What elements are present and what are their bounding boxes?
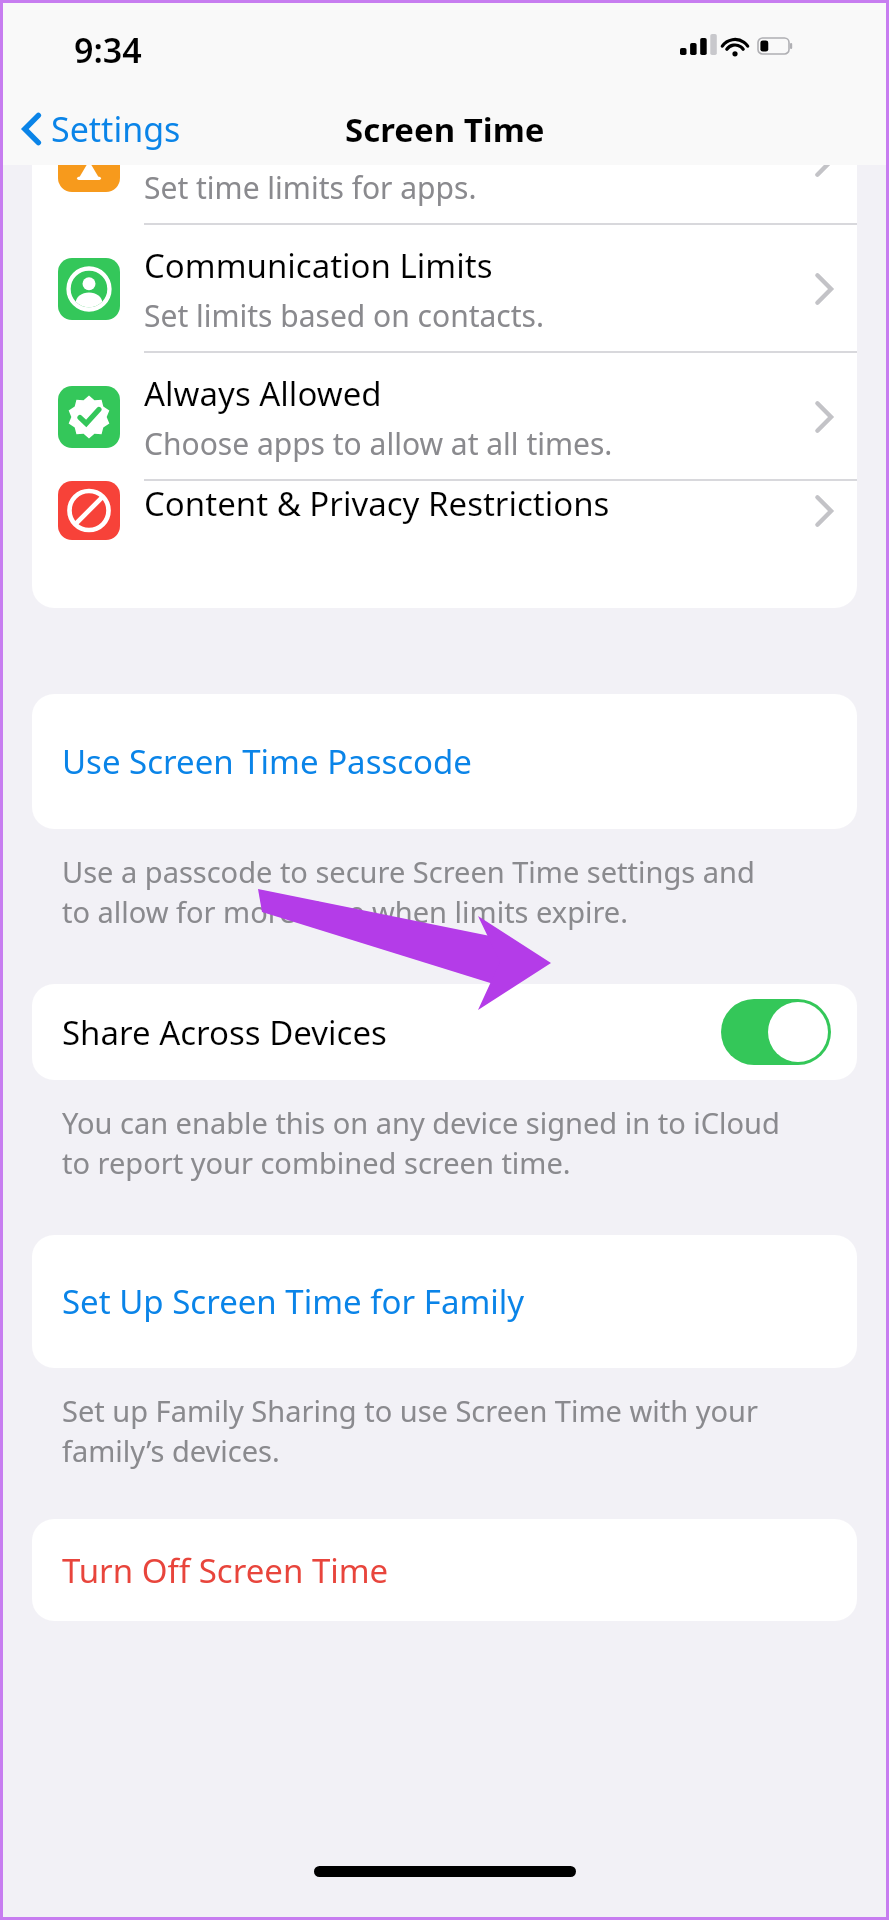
button[interactable]: Set Up Screen Time for Family <box>32 1235 857 1368</box>
staticText: Set up Family Sharing to use Screen Time… <box>62 1391 758 1471</box>
staticText: Communication Limits <box>144 243 493 288</box>
button[interactable]: Share Across Devices toggle, on <box>721 999 831 1065</box>
staticText: Use Screen Time Passcode <box>62 739 472 784</box>
staticText: Set Up Screen Time for Family <box>62 1279 525 1324</box>
button[interactable]: App Limits <box>32 165 857 225</box>
staticText: Set time limits for apps. <box>144 167 477 208</box>
staticText: 9:34 <box>74 27 142 73</box>
staticText: Settings <box>51 106 181 152</box>
staticText: You can enable this on any device signed… <box>62 1103 780 1183</box>
button[interactable]: Turn Off Screen Time <box>32 1519 857 1621</box>
staticText: Set limits based on contacts. <box>144 295 544 336</box>
staticText: Always Allowed <box>144 371 382 416</box>
staticText: Choose apps to allow at all times. <box>144 423 613 464</box>
button[interactable]: Use Screen Time Passcode <box>32 694 857 829</box>
button[interactable]: Settings <box>12 100 191 158</box>
staticText: Use a passcode to secure Screen Time set… <box>62 852 755 932</box>
button[interactable]: Always Allowed <box>32 353 857 481</box>
button[interactable]: Communication Limits <box>32 225 857 353</box>
staticText: Content & Privacy Restrictions <box>144 481 610 526</box>
staticText: Share Across Devices <box>62 1010 387 1055</box>
button[interactable]: Content & Privacy Restrictions <box>32 481 857 540</box>
button[interactable]: Share Across Devices <box>32 984 857 1080</box>
staticText: Screen Time <box>345 107 545 152</box>
staticText: Turn Off Screen Time <box>62 1548 389 1593</box>
